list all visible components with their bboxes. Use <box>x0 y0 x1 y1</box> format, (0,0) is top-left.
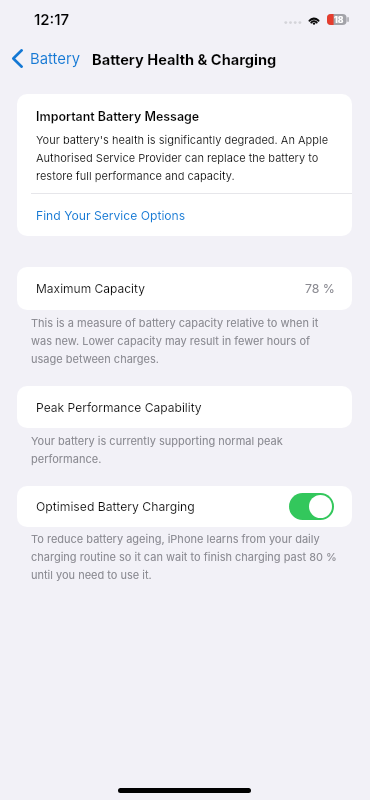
staticText: 12:17 <box>34 11 70 29</box>
button[interactable]: Optimised Battery Charging on <box>289 493 334 520</box>
staticText: Important Battery Message <box>36 109 200 124</box>
staticText: 78 % <box>305 281 335 296</box>
staticText: 18 <box>334 14 344 25</box>
staticText: Your battery is currently supporting nor… <box>31 431 341 467</box>
staticText: Battery Health & Charging <box>92 51 277 69</box>
staticText: Battery <box>30 50 81 68</box>
button[interactable]: Peak Performance Capability <box>17 386 352 428</box>
staticText: Find Your Service Options <box>36 208 186 223</box>
staticText: This is a measure of battery capacity re… <box>31 313 341 367</box>
staticText: Peak Performance Capability <box>36 400 202 415</box>
button[interactable]: Battery <box>8 46 87 71</box>
staticText: Optimised Battery Charging <box>36 499 195 514</box>
staticText: To reduce battery ageing, iPhone learns … <box>31 529 341 583</box>
staticText: Your battery's health is significantly d… <box>36 130 346 184</box>
button[interactable]: Find Your Service Options <box>17 198 352 235</box>
button[interactable]: Maximum Capacity <box>17 267 352 310</box>
button[interactable]: Optimised Battery Charging <box>17 486 352 527</box>
staticText: Maximum Capacity <box>36 281 145 296</box>
